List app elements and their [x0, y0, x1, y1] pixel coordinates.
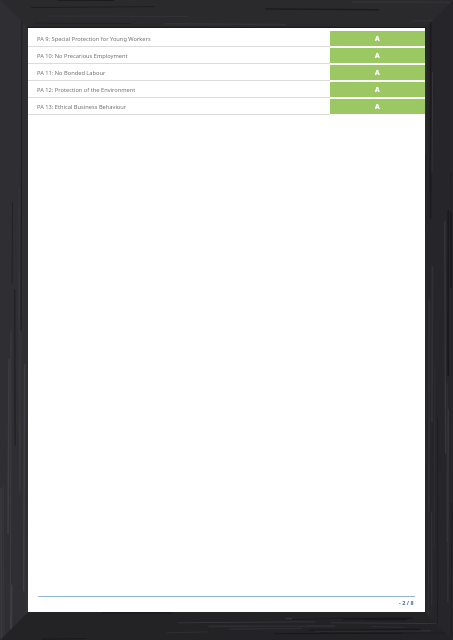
staticText: A	[375, 51, 380, 60]
button[interactable]: PA 13: Ethical Business Behaviour	[28, 98, 425, 115]
staticText: PA 9: Special Protection for Young Worke…	[37, 35, 151, 43]
button[interactable]: PA 12: Protection of the Environment	[28, 81, 425, 98]
staticText: A	[375, 85, 380, 94]
staticText: - 2 / 8	[399, 599, 414, 606]
staticText: PA 13: Ethical Business Behaviour	[37, 103, 127, 111]
button[interactable]: PA 9: Special Protection for Young Worke…	[28, 30, 425, 47]
staticText: A	[375, 68, 380, 77]
staticText: PA 10: No Precarious Employment	[37, 52, 128, 60]
button[interactable]: PA 10: No Precarious Employment	[28, 47, 425, 64]
staticText: A	[375, 34, 380, 43]
staticText: PA 12: Protection of the Environment	[37, 86, 136, 94]
staticText: A	[375, 102, 380, 111]
button[interactable]: PA 11: No Bonded Labour	[28, 64, 425, 81]
staticText: PA 11: No Bonded Labour	[37, 69, 106, 77]
